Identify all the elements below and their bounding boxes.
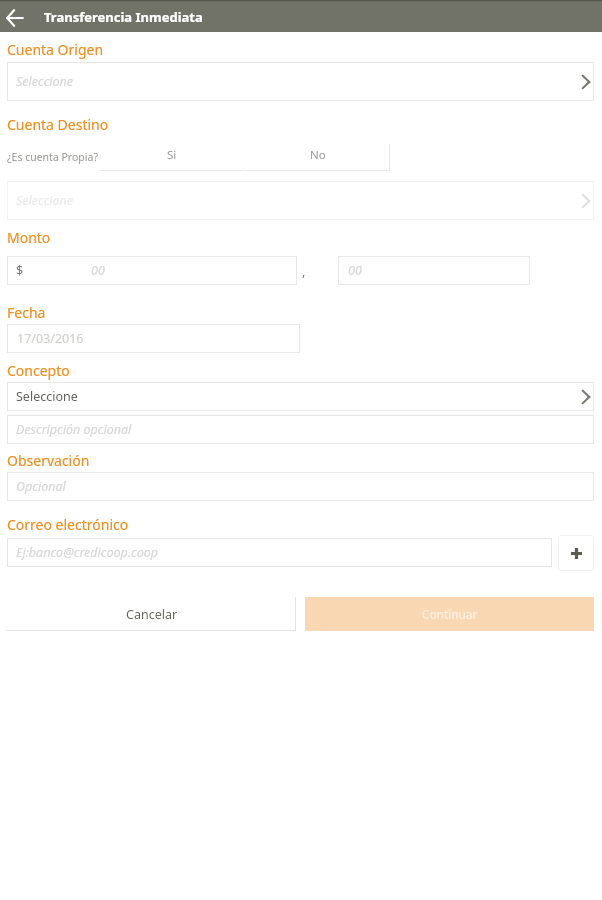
staticText: Cuenta Destino (7, 115, 109, 134)
staticText: Opcional (16, 478, 66, 495)
button[interactable]: Seleccione (7, 382, 594, 411)
staticText: Si (167, 147, 177, 163)
staticText: Monto (7, 228, 51, 247)
button[interactable]: Seleccione (7, 62, 594, 101)
button[interactable]: Agregar correo (558, 535, 594, 571)
staticText: , (302, 263, 306, 280)
staticText: Cancelar (126, 606, 178, 623)
button[interactable]: Opcional (7, 472, 594, 501)
staticText: 00 (348, 262, 362, 279)
button[interactable]: Ej:banco@credicoop.coop (7, 538, 552, 567)
staticText: Transferencia Inmediata (44, 8, 203, 26)
staticText: Seleccione (16, 192, 74, 209)
staticText: Fecha (7, 303, 46, 322)
button[interactable]: 17/03/2016 (7, 324, 300, 353)
staticText: Cuenta Origen (7, 40, 104, 59)
button[interactable]: Back (2, 5, 27, 30)
staticText: $ (16, 262, 24, 279)
staticText: 00 (91, 262, 105, 279)
staticText: Continuar (422, 606, 478, 622)
button[interactable]: Si (100, 144, 244, 171)
staticText: Observación (7, 451, 90, 470)
button[interactable]: No (246, 144, 390, 171)
staticText: 17/03/2016 (17, 330, 84, 347)
button[interactable]: $ (7, 256, 297, 285)
button[interactable]: Continuar (305, 597, 594, 631)
staticText: Correo electrónico (7, 515, 129, 534)
staticText: Descripción opcional (16, 421, 132, 438)
staticText: Concepto (7, 361, 70, 380)
staticText: Seleccione (16, 388, 78, 405)
staticText: Seleccione (16, 73, 74, 90)
button[interactable]: Cancelar (7, 596, 296, 632)
staticText: Ej:banco@credicoop.coop (16, 544, 158, 561)
button[interactable]: Descripción opcional (7, 415, 594, 444)
staticText: No (310, 147, 326, 163)
button[interactable]: Seleccione (7, 181, 594, 220)
staticText: ¿Es cuenta Propia? (7, 150, 98, 164)
button[interactable]: 00 (338, 256, 530, 285)
